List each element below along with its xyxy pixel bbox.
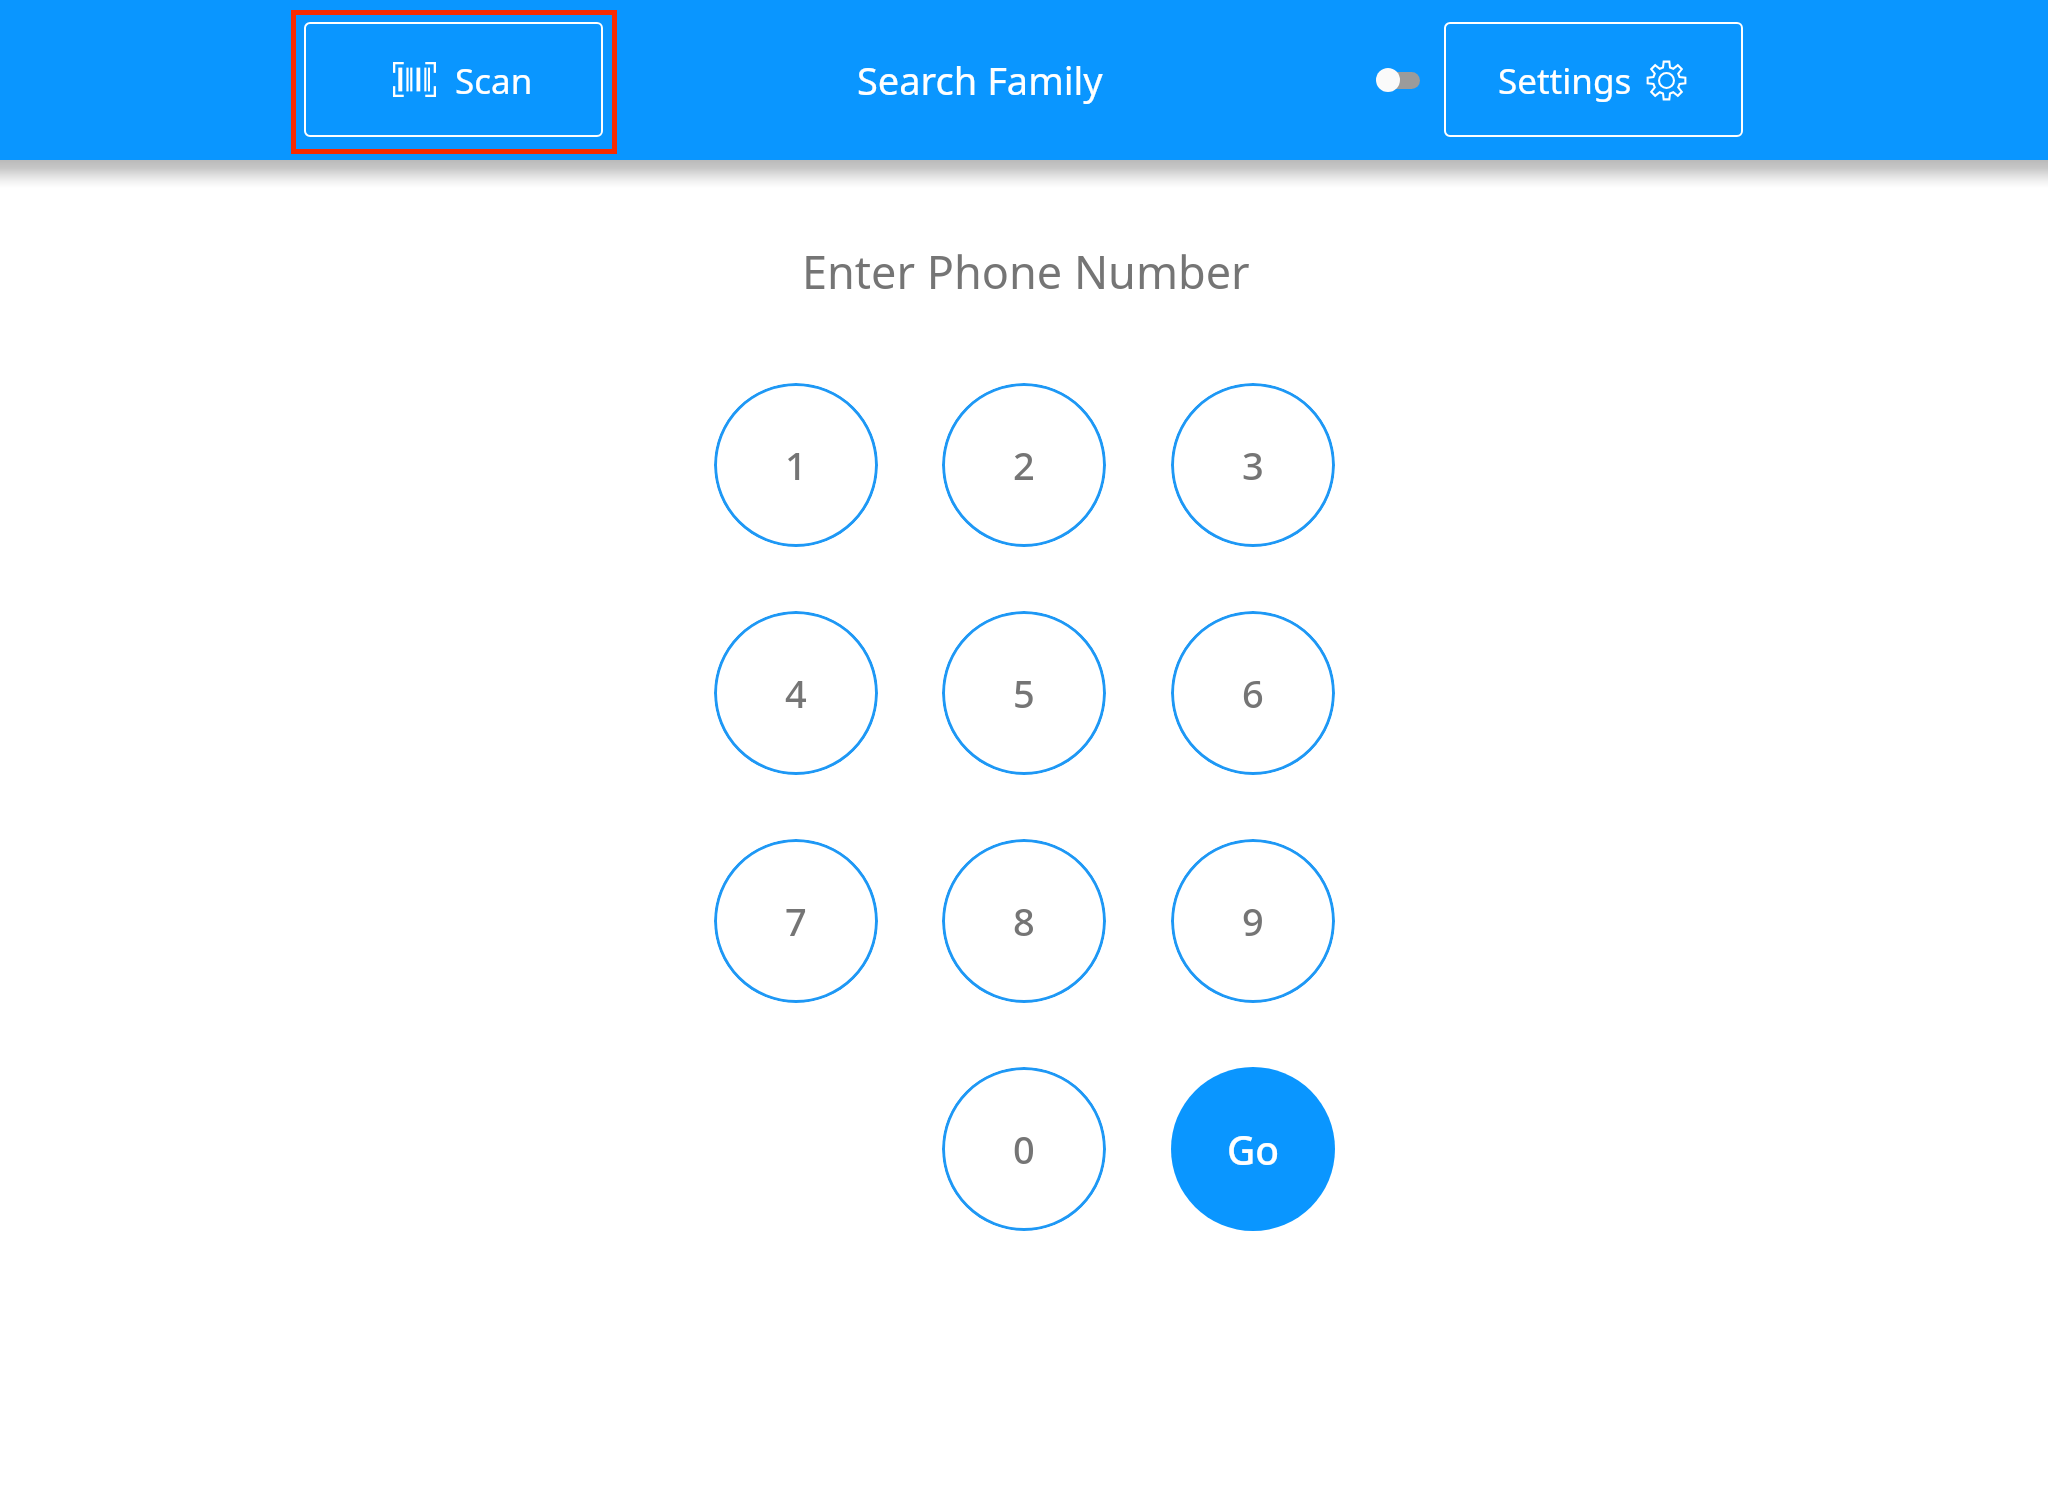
staticText: 1 bbox=[785, 439, 807, 491]
staticText: 7 bbox=[785, 895, 807, 947]
button[interactable]: 2 bbox=[942, 383, 1106, 547]
button[interactable]: 3 bbox=[1171, 383, 1335, 547]
button[interactable]: 4 bbox=[714, 611, 878, 775]
button[interactable]: Toggle search mode bbox=[1364, 56, 1432, 104]
staticText: Search Family bbox=[857, 54, 1103, 106]
button[interactable]: 5 bbox=[942, 611, 1106, 775]
staticText: 5 bbox=[1013, 667, 1035, 719]
staticText: Go bbox=[1227, 1123, 1280, 1176]
staticText: 4 bbox=[785, 667, 807, 719]
button[interactable]: 9 bbox=[1171, 839, 1335, 1003]
staticText: 0 bbox=[1013, 1123, 1035, 1175]
staticText: 3 bbox=[1242, 439, 1264, 491]
button[interactable]: 6 bbox=[1171, 611, 1335, 775]
button[interactable]: 8 bbox=[942, 839, 1106, 1003]
staticText: Enter Phone Number bbox=[802, 241, 1250, 302]
staticText: 8 bbox=[1013, 895, 1035, 947]
button[interactable]: Go bbox=[1171, 1067, 1335, 1231]
button[interactable]: Scan bbox=[304, 22, 603, 137]
staticText: Settings bbox=[1498, 57, 1632, 105]
button[interactable]: Settings bbox=[1444, 22, 1743, 137]
button[interactable]: 0 bbox=[942, 1067, 1106, 1231]
staticText: 6 bbox=[1242, 667, 1264, 719]
staticText: Scan bbox=[455, 57, 533, 105]
button[interactable]: 7 bbox=[714, 839, 878, 1003]
staticText: 9 bbox=[1242, 895, 1264, 947]
button[interactable]: 1 bbox=[714, 383, 878, 547]
staticText: 2 bbox=[1013, 439, 1035, 491]
